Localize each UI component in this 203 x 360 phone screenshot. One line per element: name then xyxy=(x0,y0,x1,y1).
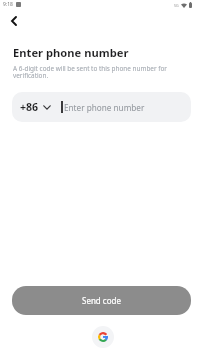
button[interactable]: Phone number input xyxy=(12,92,191,122)
staticText: Enter phone number xyxy=(64,102,145,113)
button[interactable]: Country code +86 xyxy=(20,100,51,114)
staticText: Enter phone number xyxy=(13,45,129,60)
button[interactable]: Back xyxy=(3,10,25,32)
staticText: A 6-digit code will be sent to this phon… xyxy=(13,64,169,80)
staticText: +86 xyxy=(20,100,39,114)
staticText: 9:18 xyxy=(3,1,13,8)
button[interactable]: Sign in with Google xyxy=(92,326,114,348)
staticText: 5G xyxy=(174,3,179,8)
staticText: Send code xyxy=(82,295,121,306)
button[interactable]: Send code xyxy=(12,286,191,315)
